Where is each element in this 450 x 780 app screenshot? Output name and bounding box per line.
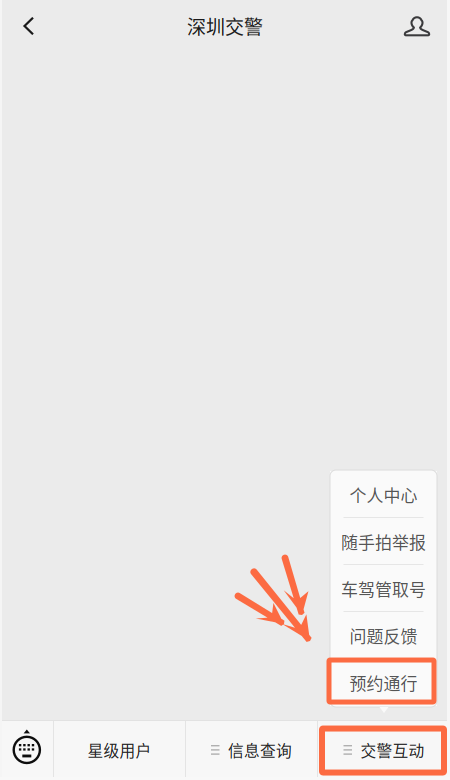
staticText: 预约通行 bbox=[349, 670, 417, 695]
staticText: 深圳交警 bbox=[187, 12, 263, 40]
button[interactable]: 随手拍举报 bbox=[330, 518, 437, 565]
button[interactable]: 预约通行 bbox=[330, 659, 437, 706]
staticText: 信息查询 bbox=[228, 739, 292, 761]
staticText: 星级用户 bbox=[87, 739, 151, 761]
button[interactable]: Account bbox=[395, 3, 439, 49]
button[interactable]: 个人中心 bbox=[330, 471, 437, 518]
button[interactable]: Keyboard bbox=[0, 720, 53, 780]
button[interactable]: Back bbox=[7, 3, 51, 49]
staticText: 问题反馈 bbox=[349, 623, 417, 648]
button[interactable]: 交警互动 bbox=[318, 720, 450, 780]
button[interactable]: 信息查询 bbox=[186, 720, 317, 780]
staticText: 交警互动 bbox=[360, 739, 424, 761]
staticText: 随手拍举报 bbox=[341, 529, 426, 554]
button[interactable]: 车驾管取号 bbox=[330, 565, 437, 612]
staticText: 车驾管取号 bbox=[341, 576, 426, 601]
button[interactable]: 问题反馈 bbox=[330, 612, 437, 659]
staticText: 个人中心 bbox=[349, 482, 417, 507]
button[interactable]: 星级用户 bbox=[54, 720, 185, 780]
